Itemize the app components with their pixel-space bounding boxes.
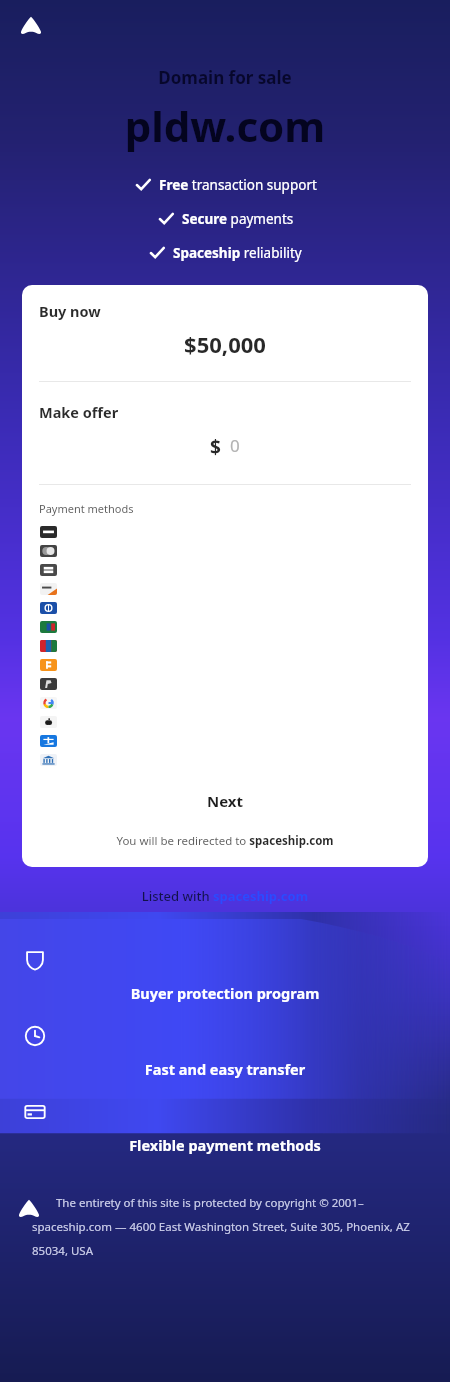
button[interactable]: Buy now — [22, 301, 428, 381]
button[interactable]: UnionPay — [40, 640, 57, 652]
staticText: $ — [210, 434, 221, 460]
staticText: Buy now — [39, 301, 101, 321]
staticText: Flexible payment methods — [0, 1135, 450, 1155]
button[interactable]: Apple Pay — [40, 716, 57, 728]
button[interactable]: Amex — [40, 564, 57, 576]
staticText: Make offer — [39, 402, 119, 422]
staticText: pldw.com — [0, 97, 450, 154]
staticText: You will be redirected to spaceship.com — [22, 833, 428, 849]
staticText: Payment methods — [39, 501, 134, 516]
button[interactable]: Bitcoin — [40, 659, 57, 671]
staticText: $50,000 — [22, 329, 428, 359]
button[interactable]: Fast and easy transfer — [0, 1025, 450, 1079]
button[interactable]: Diners Club — [40, 602, 57, 614]
button[interactable]: Visa — [40, 526, 57, 538]
button[interactable]: Google Pay — [40, 697, 57, 709]
button[interactable]: PayPal — [40, 678, 57, 690]
staticText: Domain for sale — [0, 66, 450, 89]
button[interactable]: Next — [22, 791, 428, 811]
button[interactable]: Flexible payment methods — [0, 1101, 450, 1155]
button[interactable]: Discover — [40, 583, 57, 595]
button[interactable]: Listed with spaceship.com — [0, 887, 450, 905]
staticText: The entirety of this site is protected b… — [32, 1195, 432, 1258]
staticText: Fast and easy transfer — [0, 1059, 450, 1079]
staticText: Spaceship reliability — [173, 244, 302, 262]
staticText: Buyer protection program — [0, 983, 450, 1003]
button[interactable]: Buyer protection program — [0, 949, 450, 1003]
staticText: 0 — [230, 434, 240, 457]
staticText: Secure payments — [182, 210, 294, 228]
button[interactable]: Alipay — [40, 735, 57, 747]
staticText: Free transaction support — [159, 176, 317, 194]
staticText: Next — [207, 791, 244, 811]
button[interactable]: Bank transfer — [40, 754, 57, 766]
button[interactable]: Mastercard — [40, 545, 57, 557]
button[interactable]: Make offer — [22, 402, 428, 484]
button[interactable]: JCB — [40, 621, 57, 633]
